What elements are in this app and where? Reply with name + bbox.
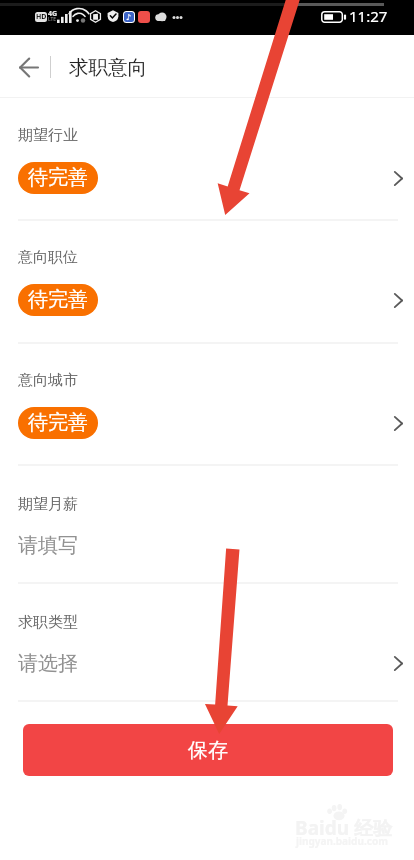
staticText: Baidu 经验 <box>295 815 392 841</box>
staticText: LTE <box>48 16 57 23</box>
button[interactable]: 求职类型 <box>0 583 414 700</box>
staticText: HD <box>36 12 47 22</box>
staticText: 意向职位 <box>18 248 78 267</box>
staticText: 求职类型 <box>18 613 78 632</box>
button[interactable]: Back <box>8 42 50 92</box>
staticText: 期望月薪 <box>18 495 78 514</box>
staticText: 11:27 <box>349 6 388 26</box>
staticText: 期望行业 <box>18 126 78 145</box>
staticText: ♪ <box>126 13 132 22</box>
staticText: 待完善 <box>28 410 88 435</box>
staticText: 请选择 <box>18 651 78 676</box>
staticText: 待完善 <box>28 287 88 312</box>
button[interactable]: 期望月薪 <box>0 465 414 582</box>
staticText: 求职意向 <box>69 55 147 80</box>
button[interactable]: 期望行业 <box>0 98 414 219</box>
button[interactable]: 保存 <box>23 724 393 776</box>
staticText: 意向城市 <box>18 371 78 390</box>
staticText: jingyan.baidu.com <box>296 834 388 848</box>
staticText: 请填写 <box>18 533 78 558</box>
staticText: 待完善 <box>28 165 88 190</box>
button[interactable]: 意向职位 <box>0 220 414 341</box>
staticText: 4G <box>48 9 58 19</box>
button[interactable]: 意向城市 <box>0 343 414 464</box>
staticText: 保存 <box>188 738 228 763</box>
